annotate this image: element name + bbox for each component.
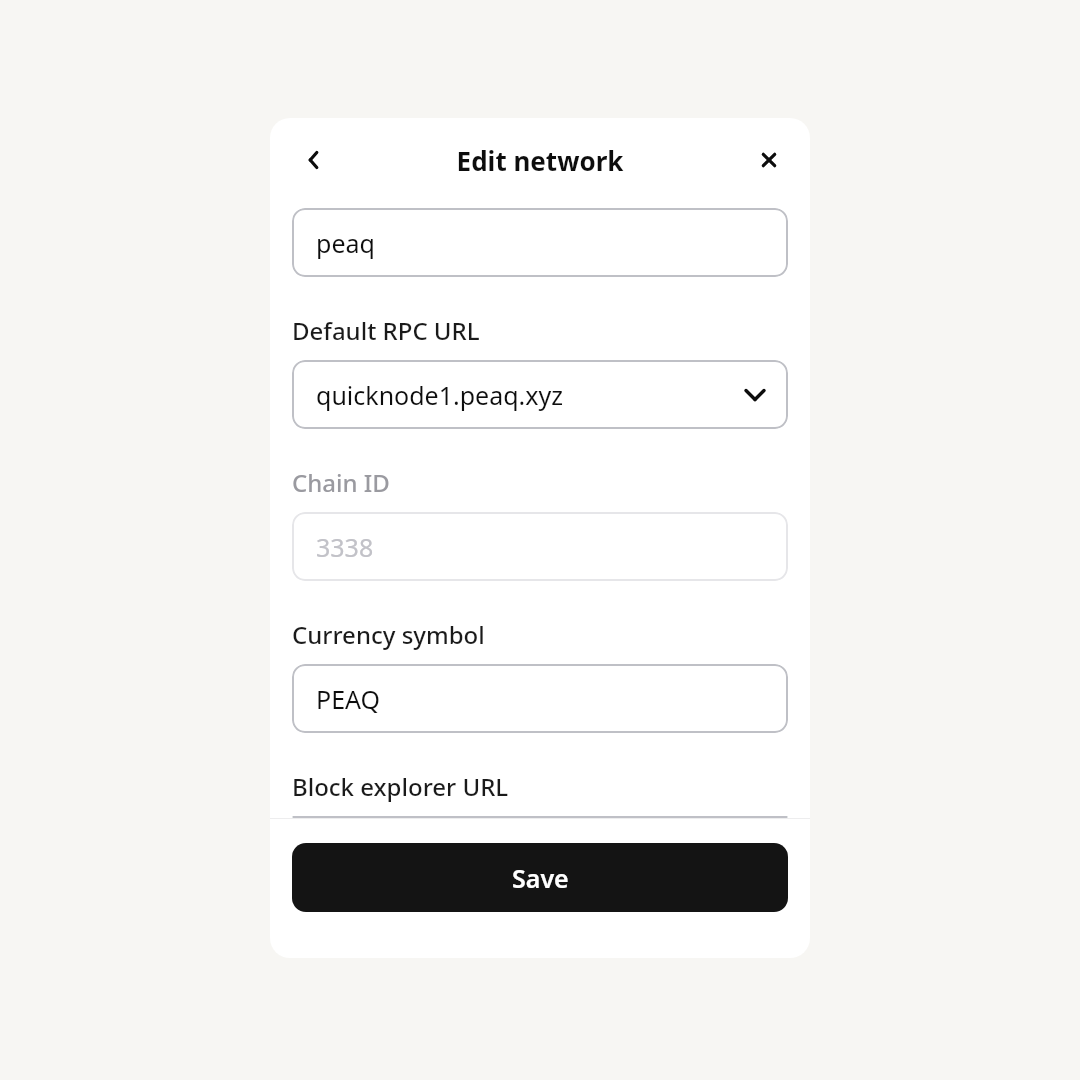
staticText: Currency symbol [292,618,485,651]
button[interactable]: peaq [292,208,788,277]
button[interactable]: 3338 [292,512,788,581]
button[interactable]: Save [292,843,788,912]
staticText: PEAQ [316,682,770,716]
button[interactable]: Select default RPC URL [292,360,788,429]
staticText: Save [512,861,569,895]
staticText: Edit network [270,143,810,178]
button[interactable]: Close [749,140,789,180]
button[interactable]: PEAQ [292,664,788,733]
staticText: peaq [316,226,770,260]
staticText: Default RPC URL [292,314,480,347]
staticText: quicknode1.peaq.xyz [316,378,740,412]
staticText: Block explorer URL [292,770,509,803]
button[interactable]: Back [295,140,335,180]
staticText: 3338 [316,530,770,564]
staticText: Chain ID [292,466,390,499]
